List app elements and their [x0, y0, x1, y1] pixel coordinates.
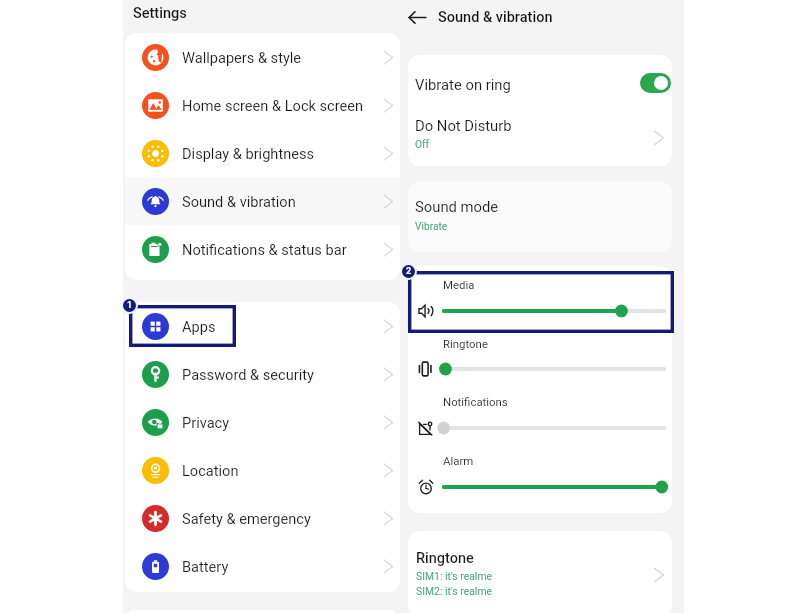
staticText: Media: [443, 278, 475, 291]
staticText: Settings: [133, 5, 187, 22]
button[interactable]: Password & security: [125, 350, 400, 398]
staticText: Wallpapers & style: [182, 49, 302, 66]
staticText: Safety & emergency: [182, 510, 311, 527]
staticText: SIM1: it's realme: [416, 570, 493, 582]
staticText: Password & security: [182, 366, 314, 383]
staticText: Alarm: [443, 454, 474, 467]
button[interactable]: Vibrate on ring: [640, 73, 671, 93]
staticText: Battery: [182, 558, 229, 575]
staticText: Notifications: [443, 395, 508, 408]
button[interactable]: Home screen & Lock screen: [125, 81, 400, 129]
button[interactable]: Back: [407, 6, 428, 29]
staticText: Privacy: [182, 414, 230, 431]
button[interactable]: Notifications volume: [437, 419, 671, 437]
button[interactable]: Location: [125, 446, 400, 494]
button[interactable]: Vibrate on ring: [408, 55, 672, 111]
button[interactable]: Privacy: [125, 398, 400, 446]
staticText: Vibrate: [415, 221, 448, 233]
button[interactable]: Alarm volume: [437, 478, 671, 496]
staticText: Location: [182, 462, 239, 479]
staticText: Sound & vibration: [438, 9, 553, 26]
staticText: Home screen & Lock screen: [182, 97, 364, 114]
button[interactable]: Display & brightness: [125, 129, 400, 177]
staticText: 1: [127, 300, 133, 311]
button[interactable]: Apps: [125, 302, 400, 350]
button[interactable]: Sound mode: [408, 181, 672, 252]
button[interactable]: Wallpapers & style: [125, 33, 400, 81]
staticText: Do Not Disturb: [415, 117, 512, 134]
button[interactable]: Ringtone volume: [437, 360, 671, 378]
staticText: Sound & vibration: [182, 193, 296, 210]
button[interactable]: Ringtone: [408, 531, 672, 613]
staticText: Display & brightness: [182, 145, 315, 162]
staticText: Sound mode: [415, 198, 499, 215]
button[interactable]: Media volume: [437, 302, 671, 320]
button[interactable]: Notifications & status bar: [125, 225, 400, 273]
staticText: Ringtone: [416, 550, 474, 567]
staticText: Off: [415, 139, 430, 151]
staticText: Apps: [182, 318, 216, 335]
button[interactable]: Sound & vibration: [125, 177, 400, 225]
staticText: Notifications & status bar: [182, 241, 347, 258]
staticText: Vibrate on ring: [415, 76, 511, 93]
button[interactable]: Safety & emergency: [125, 494, 400, 542]
staticText: 2: [406, 266, 412, 277]
staticText: SIM2: it's realme: [416, 585, 493, 597]
button[interactable]: Do Not Disturb: [408, 111, 672, 166]
staticText: Ringtone: [443, 337, 488, 350]
button[interactable]: Battery: [125, 542, 400, 590]
